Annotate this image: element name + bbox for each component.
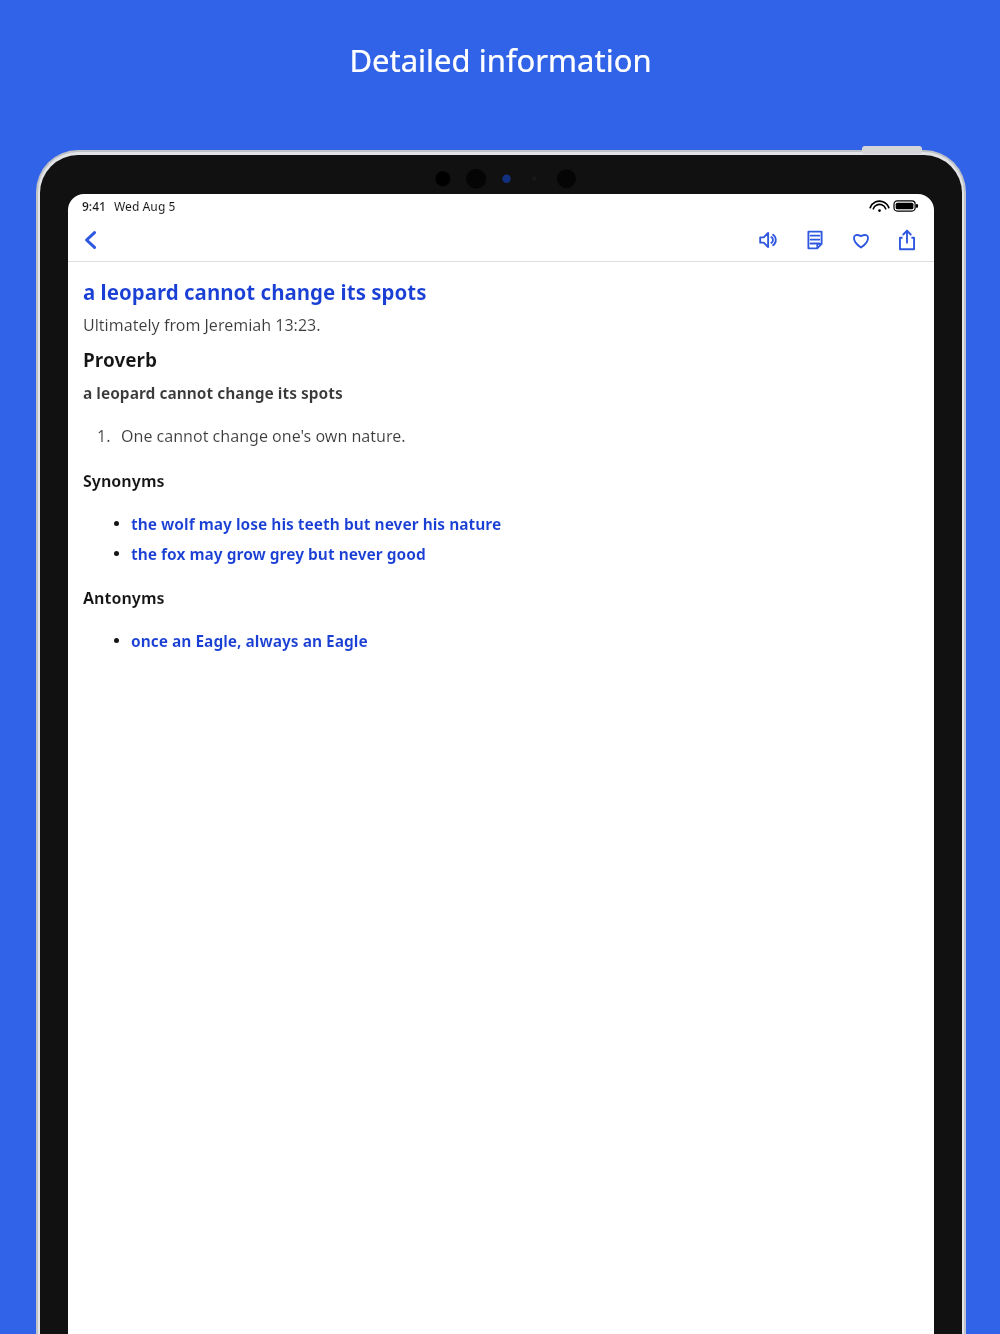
staticText: once an Eagle, always an Eagle <box>131 630 368 651</box>
staticText: a leopard cannot change its spots <box>83 382 343 403</box>
button[interactable]: Notes <box>792 218 838 261</box>
staticText: Synonyms <box>83 470 165 492</box>
button[interactable]: Back <box>68 218 114 261</box>
button[interactable]: Favorite <box>838 218 884 261</box>
staticText: the fox may grow grey but never good <box>131 543 426 564</box>
staticText: 9:41 <box>82 198 106 214</box>
button[interactable]: a leopard cannot change its spots <box>83 278 427 306</box>
staticText: Wed Aug 5 <box>114 198 176 214</box>
button[interactable]: Pronounce <box>746 218 792 261</box>
staticText: One cannot change one's own nature. <box>121 425 406 447</box>
staticText: Ultimately from Jeremiah 13:23. <box>83 314 321 336</box>
button[interactable]: the fox may grow grey but never good <box>83 543 919 564</box>
button[interactable]: once an Eagle, always an Eagle <box>83 630 919 651</box>
button[interactable]: the wolf may lose his teeth but never hi… <box>83 513 919 534</box>
button[interactable]: Share <box>884 218 930 261</box>
staticText: Proverb <box>83 347 158 373</box>
staticText: the wolf may lose his teeth but never hi… <box>131 513 502 534</box>
staticText: Detailed information <box>349 39 652 81</box>
staticText: Antonyms <box>83 587 165 609</box>
staticText: 1. <box>97 425 111 447</box>
